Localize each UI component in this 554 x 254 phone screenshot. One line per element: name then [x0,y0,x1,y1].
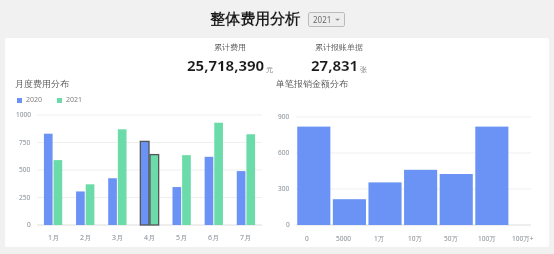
staticText: 0 [27,220,31,229]
staticText: 2021 [313,14,332,25]
staticText: 300 [278,184,290,193]
staticText: 2021 [66,95,83,105]
staticText: 50万 [444,234,458,243]
staticText: 500 [19,165,31,174]
staticText: 100万+ [512,234,534,243]
staticText: 1000 [16,110,31,119]
staticText: 1月 [48,233,60,243]
staticText: 27,831 [311,55,359,75]
staticText: 2020 [26,95,43,105]
staticText: 600 [278,148,290,157]
staticText: 100万 [478,234,496,243]
staticText: 5000 [336,234,351,243]
staticText: 1万 [374,234,385,243]
staticText: 累计费用 [214,42,246,52]
staticText: 7月 [240,233,252,243]
staticText: 6月 [208,233,220,243]
staticText: 10万 [408,234,422,243]
button[interactable]: 2021 [308,12,345,27]
staticText: 4月 [144,233,156,243]
button[interactable]: 2021 [57,95,83,105]
staticText: 元 [266,65,273,74]
staticText: 3月 [112,233,124,243]
staticText: 2月 [80,233,92,243]
staticText: 5月 [176,233,188,243]
staticText: 单笔报销金额分布 [276,78,348,89]
staticText: 0 [305,234,309,243]
staticText: 整体费用分析 [210,10,300,29]
staticText: 900 [278,112,290,121]
staticText: 0 [286,220,290,229]
staticText: 张 [360,65,367,74]
button[interactable]: 2020 [17,95,43,105]
staticText: 750 [19,138,31,147]
staticText: 累计报账单据 [315,42,363,52]
staticText: 250 [19,193,31,202]
staticText: 25,718,390 [187,55,265,75]
staticText: 月度费用分布 [15,78,69,89]
